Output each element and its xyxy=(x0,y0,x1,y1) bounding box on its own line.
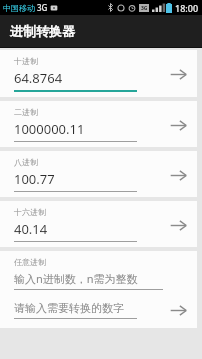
button[interactable]: Convert 十进制 xyxy=(165,61,191,87)
button[interactable]: Convert 八进制 xyxy=(165,162,191,188)
button[interactable]: 请输入需要转换的数字 xyxy=(14,297,197,323)
staticText: 八进制 xyxy=(14,157,38,167)
button[interactable]: 八进制 xyxy=(0,151,197,197)
staticText: 请输入需要转换的数字 xyxy=(14,301,124,315)
staticText: 100.77 xyxy=(14,170,55,188)
staticText: 二进制 xyxy=(14,107,38,117)
staticText: 任意进制 xyxy=(14,257,46,267)
staticText: 3G xyxy=(141,5,148,12)
button[interactable]: 输入n进制数，n需为整数 xyxy=(14,271,197,290)
button[interactable]: Convert 十六进制 xyxy=(165,212,191,238)
staticText: 40.14 xyxy=(14,220,48,238)
button[interactable]: Convert custom base xyxy=(165,297,191,323)
button[interactable]: Convert 二进制 xyxy=(165,112,191,138)
staticText: 64.8764 xyxy=(14,69,63,87)
staticText: 十六进制 xyxy=(14,207,46,217)
button[interactable]: 十进制 xyxy=(0,50,197,97)
staticText: 中国移动 xyxy=(3,3,35,13)
staticText: 1000000.11 xyxy=(14,120,85,138)
staticText: 18:00 xyxy=(175,2,199,14)
button[interactable]: 二进制 xyxy=(0,101,197,147)
button[interactable]: 十六进制 xyxy=(0,201,197,247)
staticText: 十进制 xyxy=(14,56,38,66)
staticText: 进制转换器 xyxy=(10,23,75,39)
staticText: 3G xyxy=(37,2,48,13)
staticText: 输入n进制数，n需为整数 xyxy=(14,271,138,286)
